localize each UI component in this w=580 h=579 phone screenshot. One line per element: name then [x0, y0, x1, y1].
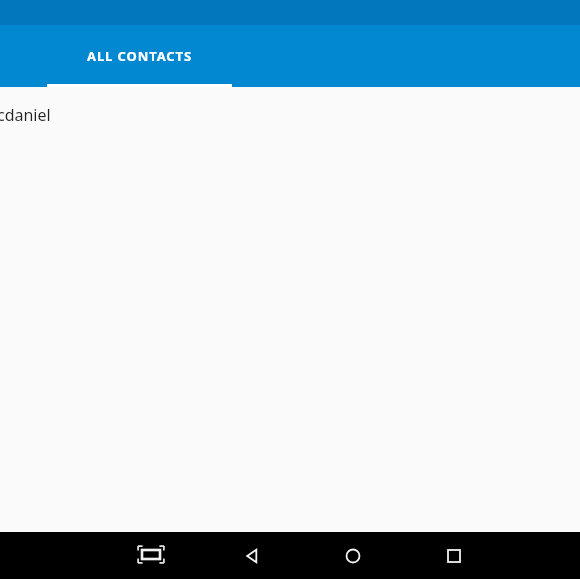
staticText: ALL CONTACTS [87, 47, 192, 65]
staticText: mcdaniel [0, 104, 51, 126]
button[interactable]: Recent apps [403, 532, 504, 579]
button[interactable]: ALL CONTACTS [47, 25, 232, 87]
button[interactable]: Hide keyboard [100, 532, 201, 579]
button[interactable]: Home [302, 532, 403, 579]
button[interactable]: mcdaniel [0, 87, 580, 143]
button[interactable]: Back [201, 532, 302, 579]
